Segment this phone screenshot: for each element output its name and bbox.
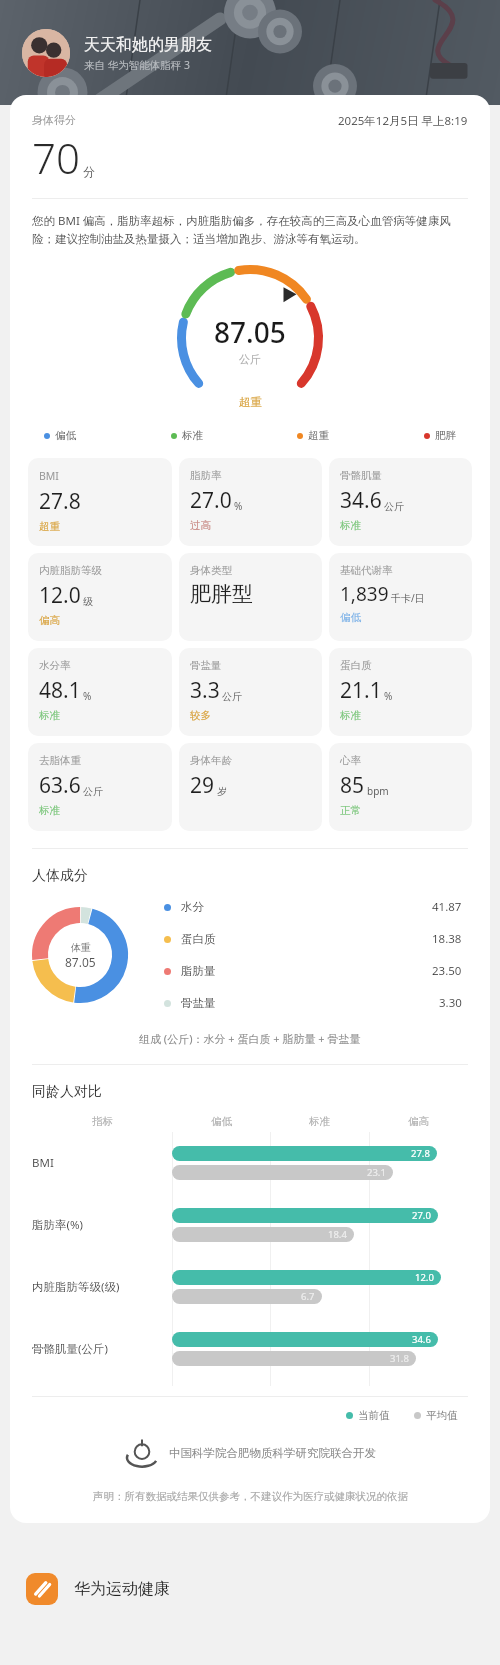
staticText: 肥胖	[435, 429, 456, 442]
staticText: 27.8	[39, 487, 81, 516]
staticText: 平均值	[426, 1409, 458, 1422]
staticText: 31.8	[390, 1352, 409, 1365]
staticText: 27.8	[411, 1147, 430, 1160]
staticText: 去脂体重	[39, 754, 81, 767]
button[interactable]: 蛋白质	[329, 648, 472, 736]
staticText: 87.05	[214, 313, 286, 351]
staticText: 体重	[71, 941, 91, 954]
staticText: 身体类型	[190, 564, 232, 577]
staticText: 身体得分	[32, 113, 76, 127]
staticText: 1,839	[340, 581, 389, 607]
staticText: 来自 华为智能体脂秤 3	[84, 58, 190, 72]
other: 华为运动健康	[26, 1573, 58, 1605]
staticText: 12.0	[415, 1271, 434, 1284]
staticText: 组成 (公斤)：水分 + 蛋白质 + 脂肪量 + 骨盐量	[139, 1031, 361, 1046]
staticText: 脂肪率(%)	[32, 1217, 83, 1233]
staticText: 超重	[239, 395, 262, 409]
staticText: 偏低	[340, 611, 361, 624]
staticText: 27.0	[190, 486, 232, 515]
staticText: 天天和她的男朋友	[84, 35, 212, 55]
staticText: 骨盐量	[181, 996, 216, 1010]
staticText: 肥胖型	[190, 581, 253, 607]
staticText: 27.0	[412, 1209, 431, 1222]
staticText: 41.87	[432, 899, 462, 915]
staticText: 蛋白质	[340, 659, 372, 672]
staticText: %	[384, 689, 393, 703]
staticText: 公斤	[83, 785, 103, 798]
staticText: 29	[190, 771, 215, 800]
button[interactable]: BMI	[28, 458, 172, 546]
staticText: 23.1	[367, 1166, 386, 1179]
staticText: 声明：所有数据或结果仅供参考，不建议作为医疗或健康状况的依据	[93, 1490, 408, 1503]
staticText: 85	[340, 771, 365, 800]
staticText: 标准	[39, 709, 60, 722]
staticText: 您的 BMI 偏高，脂肪率超标，内脏脂肪偏多，存在较高的三高及心血管病等健康风险…	[32, 213, 468, 247]
staticText: 千卡/日	[391, 591, 425, 605]
staticText: 分	[83, 164, 95, 179]
staticText: 人体成分	[32, 867, 88, 885]
staticText: BMI	[32, 1155, 54, 1171]
staticText: 超重	[308, 429, 329, 442]
staticText: 较多	[190, 709, 211, 722]
staticText: 18.38	[432, 931, 462, 947]
staticText: 水分率	[39, 659, 71, 672]
staticText: 偏高	[39, 614, 60, 627]
button[interactable]: 水分率	[28, 648, 172, 736]
staticText: 34.6	[412, 1333, 431, 1346]
button[interactable]: 去脂体重	[28, 743, 172, 831]
staticText: 当前值	[358, 1409, 390, 1422]
staticText: 身体年龄	[190, 754, 232, 767]
staticText: 内脏脂肪等级	[39, 564, 102, 577]
staticText: 华为运动健康	[74, 1579, 170, 1599]
staticText: 指标	[92, 1115, 113, 1128]
staticText: 87.05	[65, 954, 96, 970]
button[interactable]: 骨骼肌量	[329, 458, 472, 546]
staticText: 21.1	[340, 676, 382, 705]
staticText: 脂肪率	[190, 469, 222, 482]
button[interactable]: 心率	[329, 743, 472, 831]
staticText: 超重	[39, 520, 60, 533]
staticText: 水分	[181, 900, 204, 914]
staticText: 中国科学院合肥物质科学研究院联合开发	[169, 1446, 376, 1460]
staticText: 偏低	[211, 1115, 232, 1128]
staticText: 18.4	[328, 1228, 347, 1241]
staticText: 3.30	[439, 995, 462, 1011]
staticText: 标准	[39, 804, 60, 817]
staticText: 公斤	[239, 352, 261, 366]
button[interactable]: 脂肪率	[179, 458, 322, 546]
staticText: 12.0	[39, 581, 81, 610]
staticText: 标准	[340, 709, 361, 722]
button[interactable]: 华为运动健康	[0, 1547, 500, 1631]
staticText: 同龄人对比	[32, 1083, 102, 1101]
staticText: 6.7	[301, 1290, 315, 1303]
staticText: 公斤	[222, 690, 242, 703]
staticText: 级	[83, 595, 93, 608]
button[interactable]: 身体类型	[179, 553, 322, 641]
staticText: 内脏脂肪等级(级)	[32, 1279, 120, 1295]
staticText: 骨骼肌量(公斤)	[32, 1341, 108, 1357]
staticText: 63.6	[39, 771, 81, 800]
staticText: 3.3	[190, 676, 220, 705]
staticText: BMI	[39, 469, 59, 483]
staticText: 公斤	[384, 500, 404, 513]
staticText: 蛋白质	[181, 932, 216, 946]
staticText: 心率	[340, 754, 361, 767]
staticText: 偏高	[408, 1115, 429, 1128]
staticText: bpm	[367, 784, 389, 798]
staticText: 基础代谢率	[340, 564, 393, 577]
button[interactable]: 基础代谢率	[329, 553, 472, 641]
staticText: %	[234, 499, 243, 513]
staticText: 正常	[340, 804, 361, 817]
staticText: 偏低	[55, 429, 76, 442]
staticText: 标准	[309, 1115, 330, 1128]
staticText: 岁	[217, 785, 227, 798]
staticText: 23.50	[432, 963, 462, 979]
staticText: %	[83, 689, 92, 703]
button[interactable]: 内脏脂肪等级	[28, 553, 172, 641]
staticText: 骨骼肌量	[340, 469, 382, 482]
staticText: 过高	[190, 519, 211, 532]
button[interactable]: 身体年龄	[179, 743, 322, 831]
staticText: 标准	[182, 429, 203, 442]
staticText: 标准	[340, 519, 361, 532]
button[interactable]: 骨盐量	[179, 648, 322, 736]
